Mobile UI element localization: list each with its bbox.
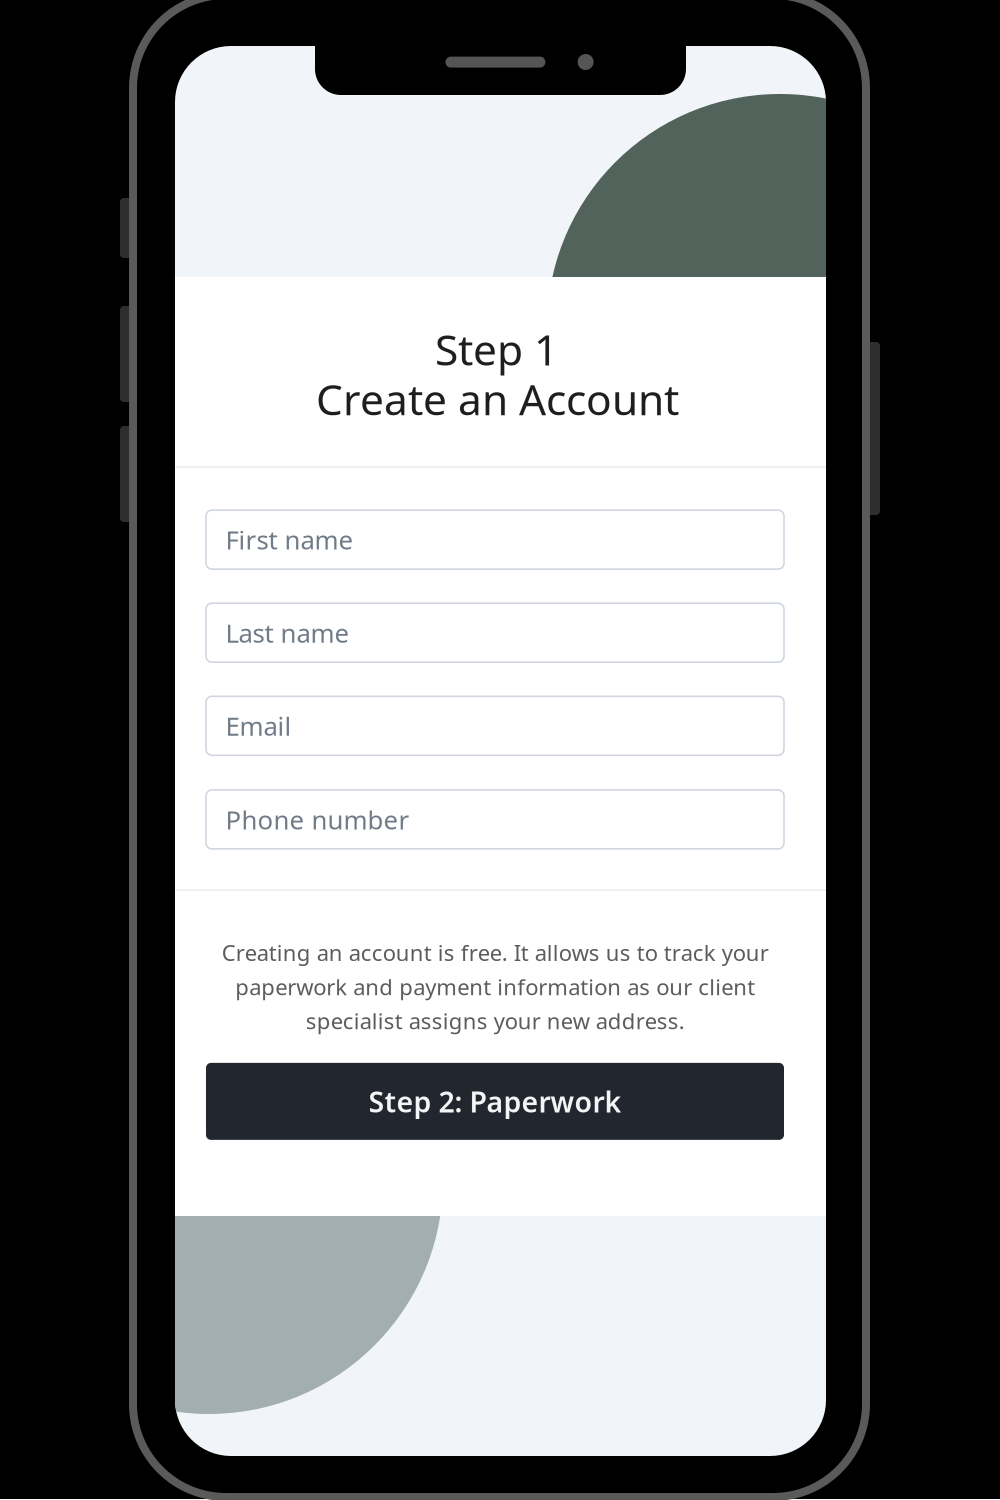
staticText: Email [225,708,291,743]
button[interactable]: Last name [206,603,784,662]
staticText: First name [225,522,353,557]
staticText: Step 2: Paperwork [368,1082,621,1121]
button[interactable]: Step 2: Paperwork [206,1063,784,1140]
staticText: Last name [225,615,349,650]
staticText: Creating an account is free. It allows u… [221,937,768,1036]
button[interactable]: Email [206,696,784,755]
staticText: Step 1 [435,320,558,378]
staticText: Phone number [225,802,409,837]
staticText: Create an Account [316,370,679,427]
button[interactable]: First name [206,510,784,569]
button[interactable]: Phone number [206,790,784,849]
